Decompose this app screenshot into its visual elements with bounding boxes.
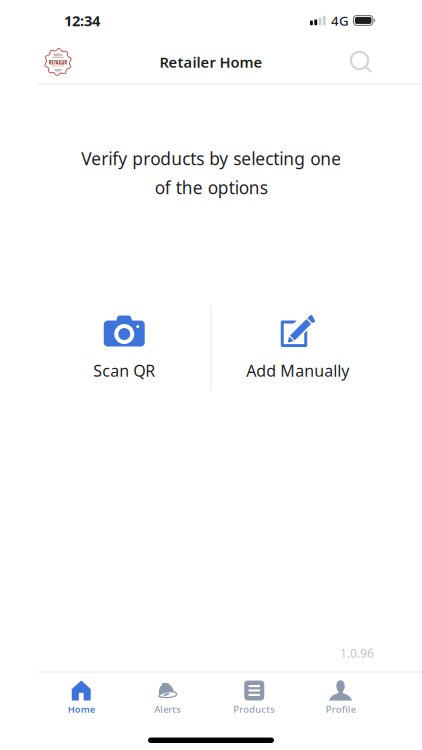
button[interactable]: Alerts bbox=[124, 673, 211, 715]
button[interactable]: Add Manually bbox=[211, 301, 384, 395]
button[interactable]: Search bbox=[342, 43, 380, 81]
staticText: Scan QR bbox=[93, 360, 155, 381]
staticText: RETAILER bbox=[45, 58, 71, 66]
staticText: 4G bbox=[331, 12, 349, 29]
staticText: Alerts bbox=[154, 703, 181, 715]
button[interactable]: Home bbox=[38, 673, 124, 715]
button[interactable]: Products bbox=[211, 673, 297, 715]
staticText: Add Manually bbox=[246, 360, 349, 381]
staticText: 12:34 bbox=[64, 11, 100, 30]
button[interactable]: Scan QR bbox=[38, 301, 210, 395]
staticText: Retailer Home bbox=[159, 52, 262, 72]
staticText: 1.0.96 bbox=[340, 645, 374, 661]
staticText: Home bbox=[68, 703, 95, 715]
staticText: Profile bbox=[326, 703, 356, 715]
staticText: 100% bbox=[53, 52, 63, 57]
button[interactable]: Profile bbox=[297, 673, 384, 715]
button[interactable]: Retailer logo bbox=[37, 41, 79, 83]
staticText: Verify products by selecting one of the … bbox=[81, 147, 341, 199]
staticText: Products bbox=[233, 703, 275, 715]
